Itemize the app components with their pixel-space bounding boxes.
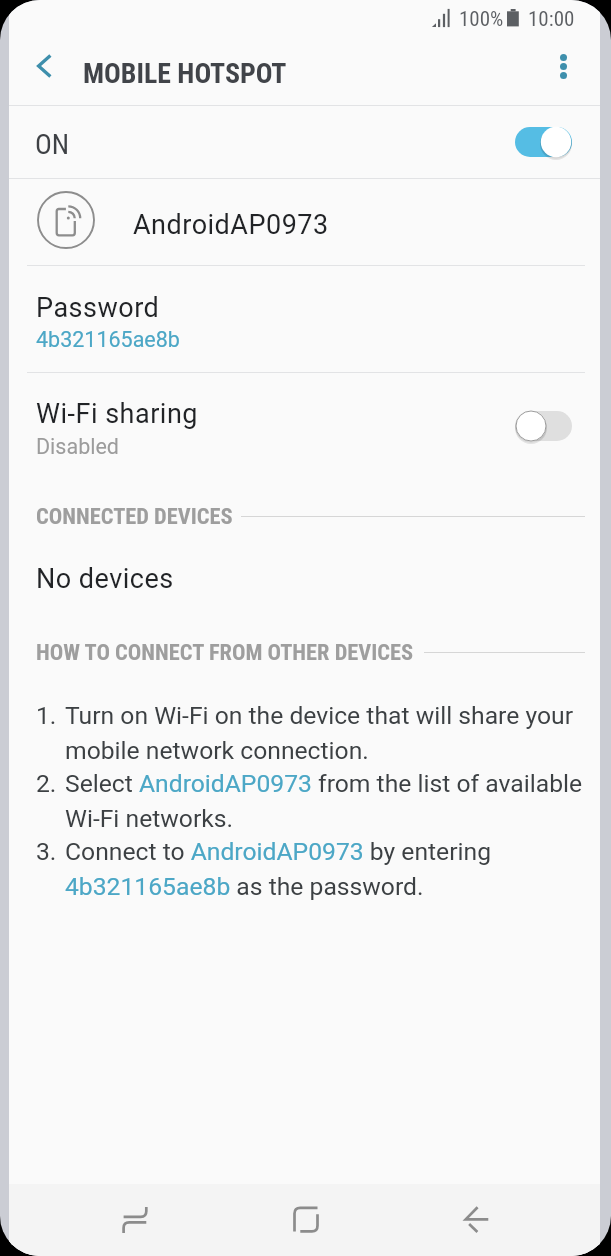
staticText: AndroidAP0973 [133, 209, 329, 240]
button[interactable]: Home [270, 1184, 342, 1256]
staticText: ON [35, 129, 70, 160]
button[interactable]: Navigate up [15, 38, 73, 94]
staticText: CONNECTED DEVICES [36, 503, 233, 529]
staticText: Password [36, 292, 160, 323]
button[interactable]: Password [9, 266, 600, 372]
staticText: Disabled [36, 434, 119, 459]
staticText: HOW TO CONNECT FROM OTHER DEVICES [36, 639, 414, 665]
staticText: 1. [36, 696, 57, 731]
staticText: No devices [36, 563, 174, 594]
button[interactable]: More options [535, 38, 591, 94]
button[interactable]: Back [441, 1184, 513, 1256]
staticText: 100% [459, 7, 504, 31]
staticText: 3. [36, 832, 57, 867]
staticText: 4b321165ae8b [36, 327, 180, 352]
staticText: MOBILE HOTSPOT [83, 59, 287, 89]
staticText: 2. [36, 764, 57, 799]
staticText: 10:00 [528, 7, 575, 31]
button[interactable]: Wi-Fi sharing [9, 373, 600, 482]
button[interactable]: AndroidAP0973 [9, 179, 600, 265]
button[interactable]: Recent apps [99, 1184, 171, 1256]
staticText: Connect to AndroidAP0973 by entering 4b3… [65, 832, 592, 902]
button[interactable]: ON [9, 106, 600, 178]
staticText: Select AndroidAP0973 from the list of av… [65, 764, 592, 834]
staticText: Wi-Fi sharing [36, 398, 198, 429]
staticText: Turn on Wi-Fi on the device that will sh… [65, 696, 592, 766]
